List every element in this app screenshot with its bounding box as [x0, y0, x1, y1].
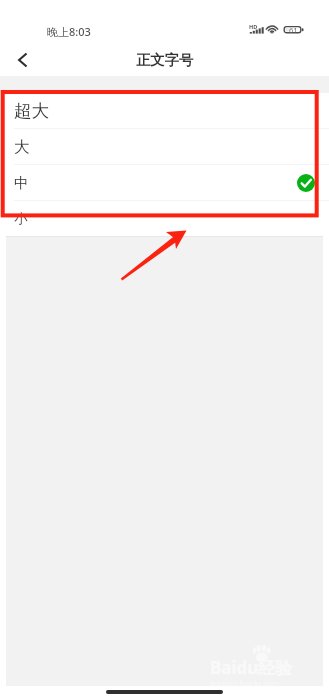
staticText: 中 [14, 174, 29, 192]
staticText: 晚上8:03 [47, 24, 91, 39]
button[interactable]: 中 [0, 165, 329, 200]
staticText: 正文字号 [136, 51, 194, 69]
staticText: 超大 [14, 100, 50, 122]
staticText: 61 [289, 25, 298, 35]
staticText: Baidu经验 [210, 656, 293, 679]
staticText: 小 [14, 210, 28, 227]
button[interactable]: 大 [0, 129, 329, 164]
staticText: jingyan.baidu.com [210, 678, 280, 689]
staticText: 大 [14, 137, 30, 157]
button[interactable]: 小 [0, 201, 329, 236]
staticText: HD [249, 23, 258, 30]
button[interactable]: 超大 [0, 93, 329, 128]
button[interactable]: Back [0, 44, 44, 76]
